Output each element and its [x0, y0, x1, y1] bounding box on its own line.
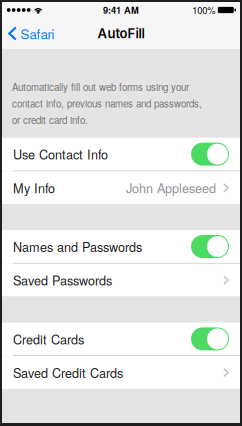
staticText: Saved Passwords	[13, 271, 112, 289]
staticText: 9:41 AM	[103, 3, 139, 17]
staticText: Safari	[20, 24, 54, 43]
staticText: AutoFill	[97, 26, 144, 41]
staticText: Names and Passwords	[13, 237, 142, 256]
staticText: 100%	[192, 3, 215, 17]
staticText: Credit Cards	[13, 330, 84, 348]
staticText: Automatically fill out web forms using y…	[12, 80, 189, 94]
staticText: or credit card info.	[12, 113, 88, 127]
button[interactable]: Saved Passwords	[2, 264, 240, 296]
button[interactable]: Saved Credit Cards	[2, 356, 240, 389]
staticText: My Info	[13, 179, 55, 197]
staticText: contact info, previous names and passwor…	[12, 96, 202, 110]
staticText: Use Contact Info	[13, 145, 108, 163]
button[interactable]: Use Contact Info	[2, 138, 240, 170]
button[interactable]: Safari	[2, 18, 62, 49]
button[interactable]: Credit Cards	[2, 322, 240, 355]
button[interactable]: Names and Passwords	[2, 230, 240, 263]
staticText: John Appleseed	[126, 179, 216, 197]
button[interactable]: My Info	[2, 171, 240, 204]
staticText: Saved Credit Cards	[13, 363, 123, 382]
